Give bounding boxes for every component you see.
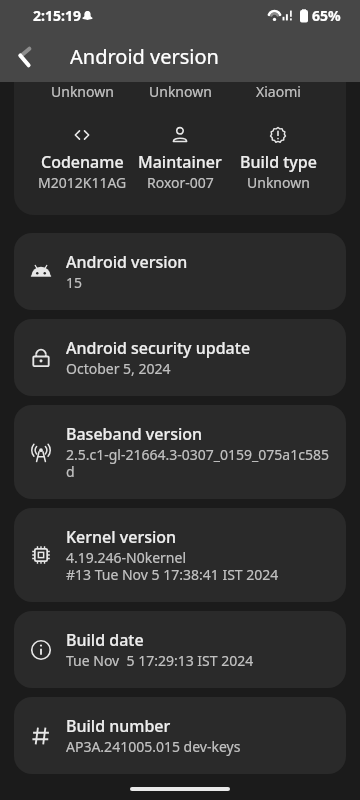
staticText: Build date	[66, 629, 144, 651]
staticText: Codename	[41, 151, 124, 173]
staticText: 15	[66, 273, 83, 292]
staticText: M2012K11AG	[38, 173, 127, 192]
button[interactable]: Device	[14, 15, 346, 215]
staticText: Kernel version	[66, 526, 177, 548]
staticText: Android version	[66, 251, 188, 273]
staticText: Unknown	[51, 82, 114, 101]
button[interactable]: Kernel version	[14, 508, 346, 602]
staticText: 65%	[312, 6, 341, 25]
staticText: AP3A.241005.015 dev-keys	[66, 737, 241, 756]
button[interactable]: Build date	[14, 611, 346, 688]
staticText: Unknown	[247, 173, 310, 192]
staticText: Tue Nov 5 17:29:13 IST 2024	[66, 651, 254, 670]
staticText: Device	[57, 60, 108, 82]
staticText: Processor	[142, 60, 218, 82]
staticText: 4.19.246-N0kernel #13 Tue Nov 5 17:38:41…	[66, 548, 279, 584]
staticText: 2:15:19	[33, 6, 81, 25]
staticText: Baseband version	[66, 423, 203, 445]
staticText: October 5, 2024	[66, 359, 171, 378]
staticText: 2.5.c1-gl-21664.3-0307_0159_075a1c585 d	[66, 445, 329, 481]
button[interactable]: Android version	[14, 233, 346, 310]
staticText: Build type	[240, 151, 317, 173]
staticText: Maintainer	[138, 151, 222, 173]
staticText: Android security update	[66, 337, 251, 359]
button[interactable]: Baseband version	[14, 405, 346, 499]
button[interactable]: Navigate up	[6, 37, 46, 77]
button[interactable]: Android security update	[14, 319, 346, 396]
staticText: Unknown	[149, 82, 212, 101]
button[interactable]: Build number	[14, 697, 346, 774]
staticText: Build number	[66, 715, 171, 737]
staticText: Android version	[70, 43, 219, 70]
staticText: Roxor-007	[147, 173, 214, 192]
staticText: Xiaomi	[256, 82, 301, 101]
